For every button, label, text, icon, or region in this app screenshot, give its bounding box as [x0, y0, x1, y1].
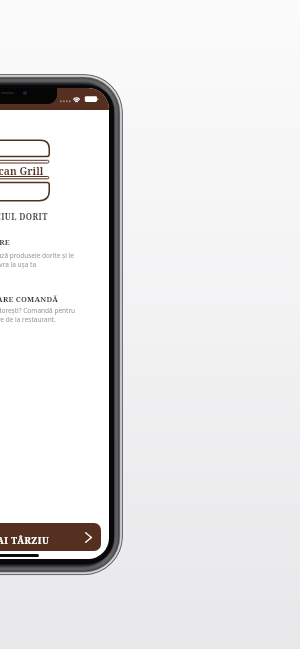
staticText: ridicare de la restaurant.	[0, 315, 56, 324]
staticText: vom livra la ușa ta	[0, 260, 37, 269]
staticText: Ce dorești? Comandă pentru	[0, 306, 76, 315]
staticText: American Grill	[0, 164, 44, 178]
staticText: Selectează produsele dorite și le	[0, 251, 74, 260]
button[interactable]: MAI TÂRZIU	[0, 523, 101, 551]
other: Status	[57, 95, 100, 105]
staticText: MAI TÂRZIU	[0, 534, 50, 546]
button[interactable]	[0, 234, 90, 274]
staticText: ALEGE SERVICIUL DORIT	[0, 211, 48, 222]
staticText: LIVRARE	[0, 237, 10, 247]
staticText: RIDICARE COMANDĂ	[0, 294, 59, 304]
button[interactable]	[0, 289, 90, 329]
